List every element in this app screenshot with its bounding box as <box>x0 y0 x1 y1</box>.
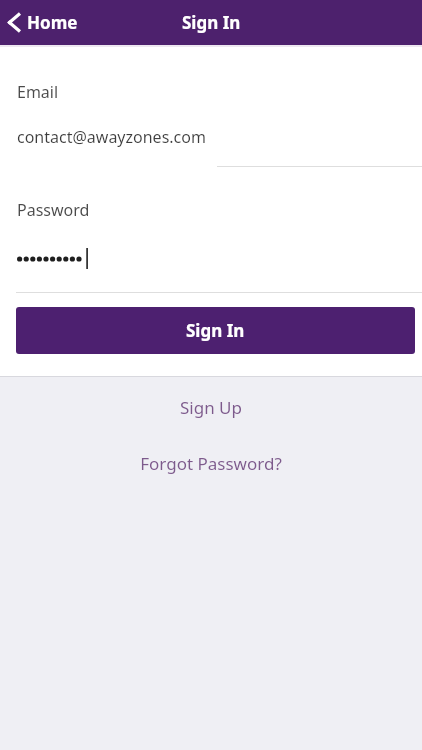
button[interactable]: contact@awayzones.com <box>0 119 422 159</box>
staticText: Sign In <box>182 11 241 34</box>
button[interactable]: Home <box>0 0 90 45</box>
button[interactable]: Sign In <box>16 307 415 354</box>
button[interactable]: Forgot Password? <box>0 446 422 480</box>
button[interactable] <box>0 237 422 281</box>
staticText: Password <box>17 199 90 221</box>
button[interactable]: Sign Up <box>0 390 422 424</box>
staticText: Sign Up <box>180 396 242 419</box>
staticText: contact@awayzones.com <box>17 126 206 148</box>
staticText: Email <box>17 81 59 103</box>
staticText: Forgot Password? <box>140 452 282 475</box>
staticText: Home <box>27 11 78 34</box>
staticText: Sign In <box>186 319 245 342</box>
